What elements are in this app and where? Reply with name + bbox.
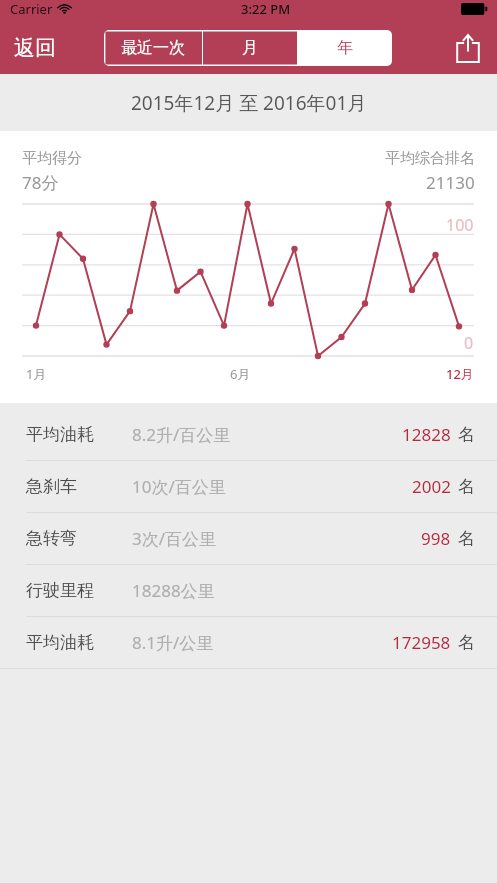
staticText: 18288公里 [132, 579, 215, 602]
staticText: 年 [337, 38, 353, 58]
button[interactable]: 急转弯 [0, 513, 497, 564]
staticText: 12月 [446, 365, 474, 383]
staticText: 8.1升/公里 [132, 631, 214, 654]
staticText: 0 [464, 332, 474, 354]
button[interactable]: 急刹车 [0, 461, 497, 512]
staticText: 3:22 PM [241, 0, 291, 18]
staticText: 100 [446, 214, 474, 236]
button[interactable]: 年 [298, 30, 392, 66]
staticText: 10次/百公里 [132, 475, 226, 498]
button[interactable]: 返回 [6, 31, 64, 65]
staticText: 名 [458, 528, 475, 549]
staticText: 平均油耗 [26, 632, 94, 653]
staticText: 平均油耗 [26, 424, 94, 445]
staticText: 2002 [412, 475, 451, 498]
staticText: 2015年12月 至 2016年01月 [131, 90, 367, 116]
staticText: 6月 [230, 365, 251, 383]
staticText: 行驶里程 [26, 580, 94, 601]
button[interactable]: 最近一次 [104, 30, 202, 66]
staticText: 名 [458, 632, 475, 653]
staticText: 172958 [392, 631, 451, 654]
staticText: 最近一次 [121, 38, 185, 58]
staticText: 平均得分 [22, 149, 82, 168]
staticText: 78分 [22, 171, 59, 194]
button[interactable]: Share [447, 27, 489, 69]
staticText: 1月 [26, 365, 47, 383]
button[interactable]: 平均油耗 [0, 409, 497, 460]
staticText: Carrier [10, 0, 53, 18]
button[interactable]: 月 [203, 30, 297, 66]
staticText: 8.2升/百公里 [132, 423, 231, 446]
staticText: 急刹车 [26, 476, 77, 497]
staticText: 3次/百公里 [132, 527, 217, 550]
staticText: 12828 [402, 423, 451, 446]
staticText: 返回 [14, 35, 56, 61]
staticText: 21130 [426, 171, 475, 194]
staticText: 名 [458, 424, 475, 445]
staticText: 平均综合排名 [385, 149, 475, 168]
button[interactable]: 平均油耗 [0, 617, 497, 668]
staticText: 月 [242, 38, 258, 58]
staticText: 急转弯 [26, 528, 77, 549]
button[interactable]: 行驶里程 [0, 565, 497, 616]
staticText: 名 [458, 476, 475, 497]
staticText: 998 [421, 527, 451, 550]
